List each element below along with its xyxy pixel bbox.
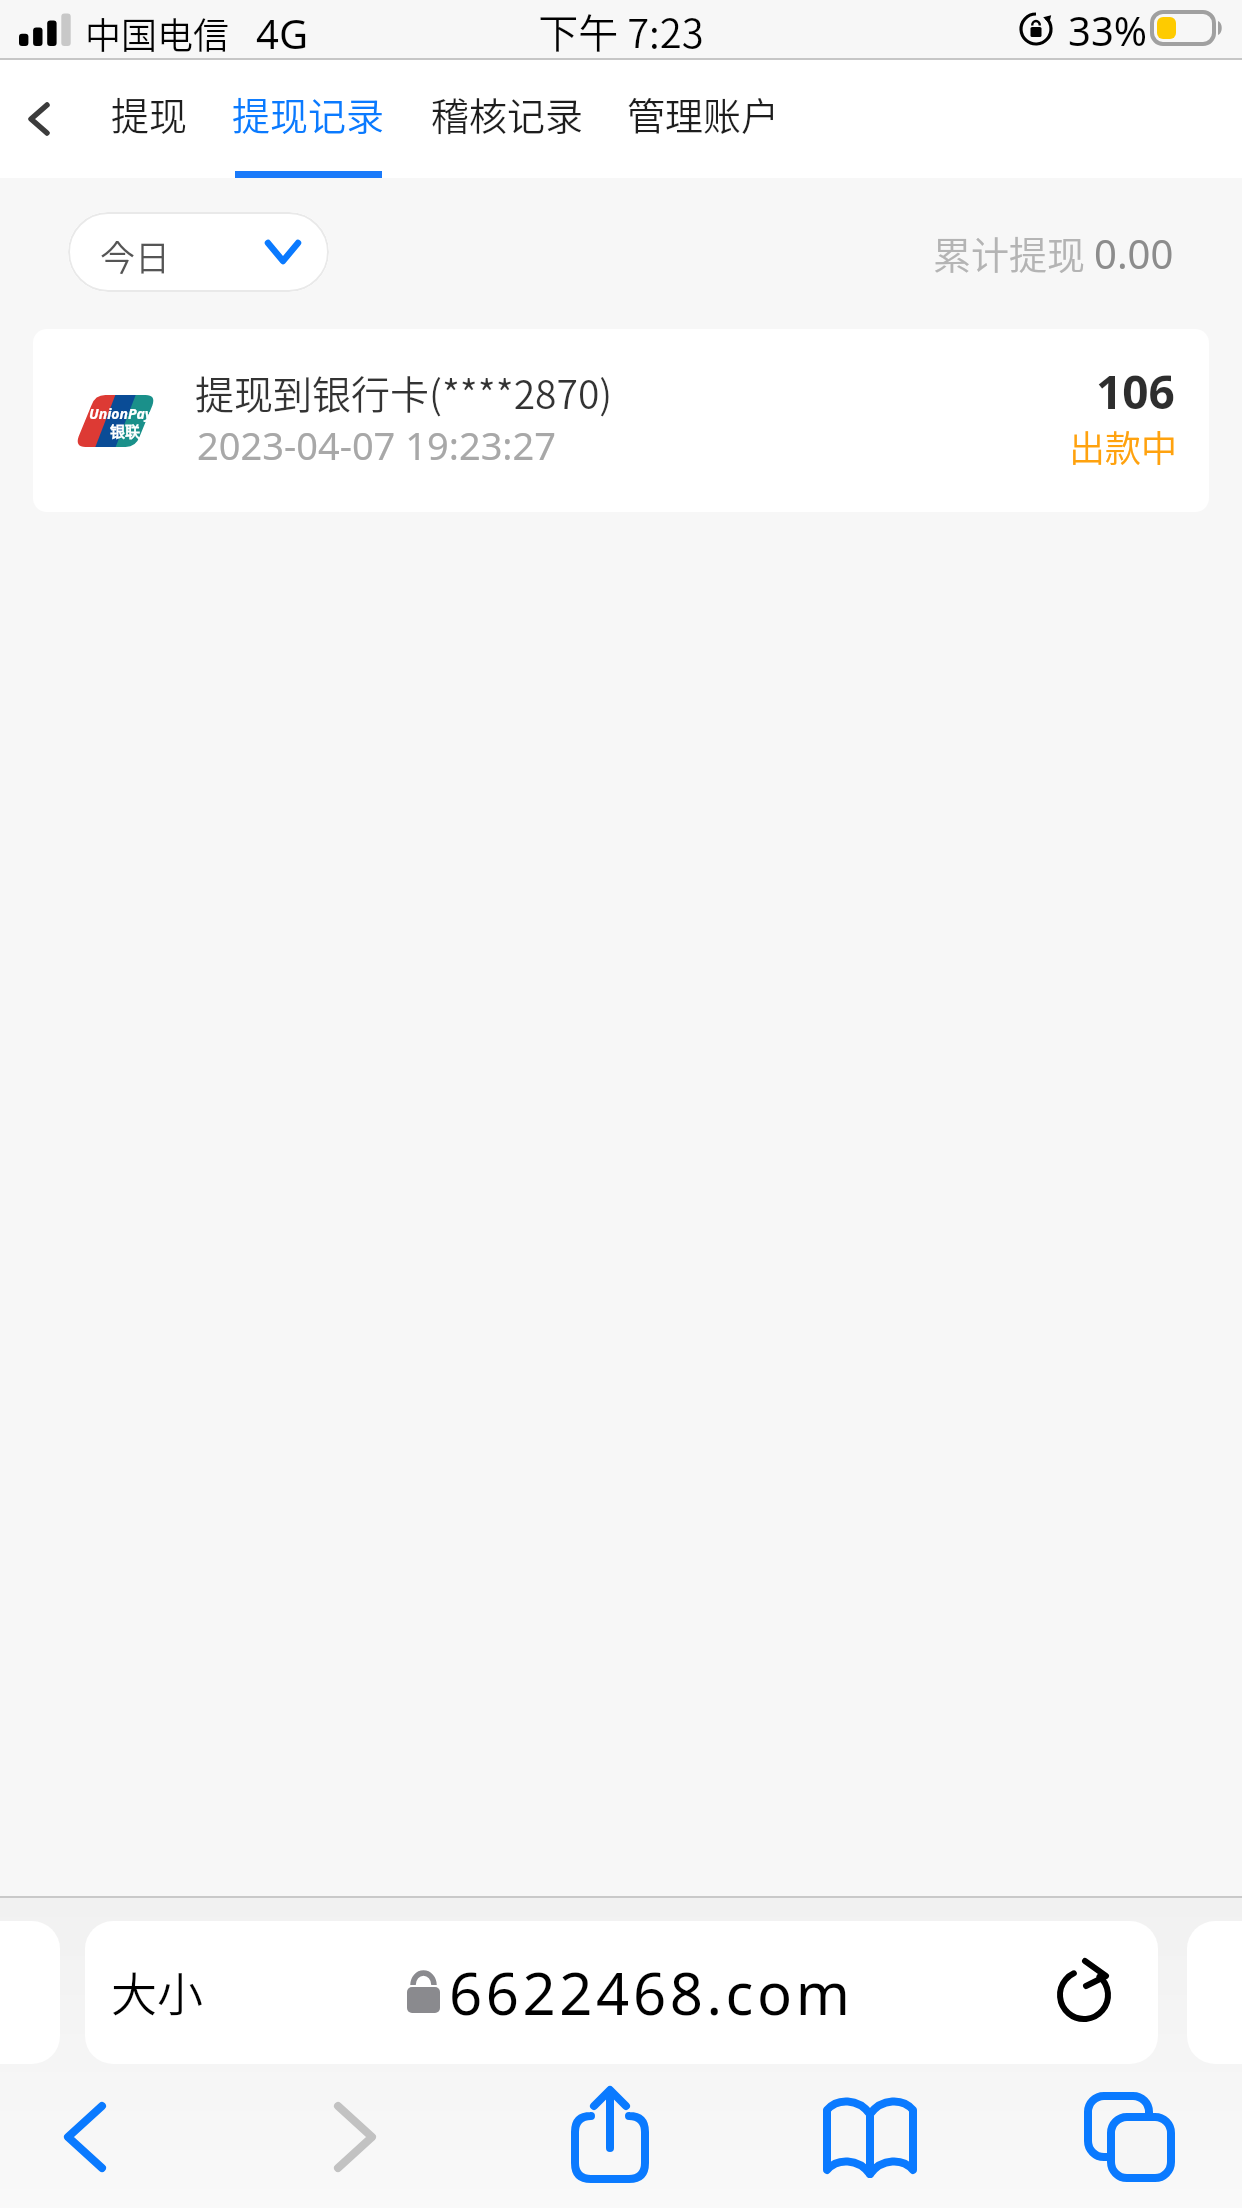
button[interactable]: 管理账户 [610, 60, 797, 178]
staticText: 下午 7:23 [0, 2, 1242, 60]
staticText: 大小 [111, 1958, 203, 2025]
staticText: 2023-04-07 19:23:27 [197, 419, 557, 471]
staticText: 4G [256, 6, 308, 60]
staticText: 33% [1068, 3, 1147, 57]
staticText: 提现到银行卡(****2870) [195, 364, 613, 420]
staticText: UnionPay [89, 404, 153, 423]
button[interactable]: 大小 [97, 1941, 217, 2041]
staticText: 106 [1096, 360, 1175, 423]
staticText: 提现 [111, 86, 188, 141]
staticText: 管理账户 [627, 86, 780, 141]
button[interactable]: Forward [300, 2082, 410, 2192]
button[interactable]: 提现记录 [215, 60, 402, 178]
staticText: 今日 [100, 230, 171, 281]
button[interactable]: 今日 [68, 212, 329, 292]
button[interactable]: UnionPay [33, 329, 1209, 512]
button[interactable]: 稽核记录 [414, 60, 601, 178]
staticText: 中国电信 [85, 7, 230, 59]
staticText: 提现记录 [232, 86, 385, 141]
button[interactable]: Back [30, 2082, 140, 2192]
button[interactable]: Tabs [1075, 2082, 1185, 2192]
staticText: 银联 [110, 420, 141, 442]
button[interactable]: 大小 [85, 1921, 1158, 2064]
button[interactable]: Share [555, 2082, 665, 2192]
button[interactable]: Reload [1044, 1952, 1124, 2032]
button[interactable]: 提现 [92, 60, 207, 178]
button[interactable]: Bookmarks [815, 2082, 925, 2192]
staticText: 出款中 [1069, 420, 1178, 472]
staticText: 6622468.com [449, 1953, 854, 2032]
staticText: 累计提现 [933, 225, 1094, 280]
button[interactable]: Back [2, 82, 76, 156]
staticText: 稽核记录 [431, 86, 584, 141]
staticText: 0.00 [1094, 226, 1174, 280]
